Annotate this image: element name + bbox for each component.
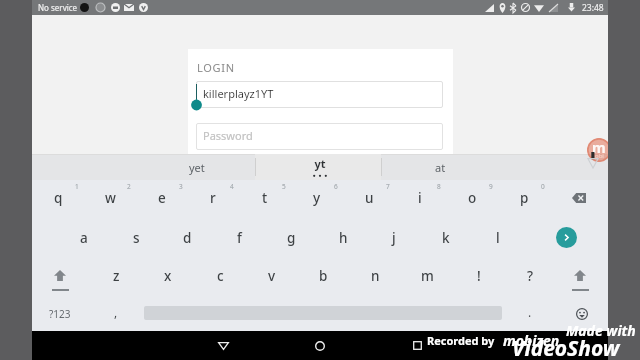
- staticText: k: [442, 229, 450, 247]
- staticText: x: [164, 267, 172, 285]
- staticText: mobizen: [503, 331, 560, 350]
- staticText: 1: [75, 182, 79, 191]
- staticText: j: [392, 229, 396, 247]
- staticText: m: [421, 267, 434, 285]
- staticText: 2: [127, 182, 131, 191]
- staticText: d: [183, 229, 192, 247]
- staticText: 5: [282, 182, 286, 191]
- button[interactable]: j: [368, 219, 420, 257]
- staticText: p: [520, 189, 529, 207]
- staticText: Made with: [566, 321, 636, 340]
- staticText: a: [80, 229, 88, 247]
- button[interactable]: i: [394, 179, 446, 217]
- button[interactable]: killerplayz1YT: [196, 81, 443, 108]
- staticText: 0: [541, 182, 545, 191]
- button[interactable]: d: [161, 219, 213, 257]
- staticText: f: [237, 229, 242, 247]
- staticText: l: [496, 229, 500, 247]
- staticText: n: [371, 267, 380, 285]
- button[interactable]: r: [187, 179, 239, 217]
- button[interactable]: a: [58, 219, 110, 257]
- button[interactable]: k: [420, 219, 472, 257]
- staticText: ?123: [49, 307, 71, 321]
- staticText: w: [105, 189, 116, 207]
- button[interactable]: at: [385, 154, 495, 180]
- staticText: yt: [257, 156, 383, 171]
- staticText: LOGIN: [197, 60, 235, 75]
- button[interactable]: q: [32, 179, 84, 217]
- staticText: t: [262, 189, 268, 207]
- staticText: b: [319, 267, 328, 285]
- staticText: z: [113, 267, 120, 285]
- staticText: yet: [189, 160, 205, 175]
- button[interactable]: h: [317, 219, 369, 257]
- staticText: 9: [489, 182, 493, 191]
- button[interactable]: u: [343, 179, 395, 217]
- staticText: m: [592, 138, 606, 157]
- staticText: ,: [114, 304, 118, 320]
- button[interactable]: Recents: [393, 331, 441, 360]
- button[interactable]: Backspace: [553, 179, 605, 217]
- button[interactable]: Mobizen: [587, 138, 608, 162]
- staticText: i: [418, 189, 422, 207]
- button[interactable]: p: [498, 179, 550, 217]
- button[interactable]: !: [453, 257, 505, 295]
- button[interactable]: ?: [504, 257, 556, 295]
- staticText: Recorded by: [427, 333, 495, 348]
- staticText: q: [54, 189, 63, 207]
- button[interactable]: f: [213, 219, 265, 257]
- button[interactable]: c: [194, 257, 246, 295]
- staticText: No service: [38, 2, 78, 13]
- button[interactable]: e: [136, 179, 188, 217]
- staticText: 7: [386, 182, 390, 191]
- staticText: v: [268, 267, 276, 285]
- button[interactable]: m: [401, 257, 453, 295]
- staticText: 6: [334, 182, 338, 191]
- button[interactable]: Home: [296, 331, 344, 360]
- button[interactable]: w: [84, 179, 136, 217]
- button[interactable]: ,: [96, 296, 136, 332]
- button[interactable]: Shift: [34, 256, 86, 294]
- button[interactable]: g: [265, 219, 317, 257]
- button[interactable]: o: [446, 179, 498, 217]
- button[interactable]: Back: [199, 331, 247, 360]
- button[interactable]: Enter: [540, 218, 592, 256]
- staticText: 3: [179, 182, 183, 191]
- button[interactable]: yt: [257, 154, 383, 180]
- button[interactable]: Shift: [554, 256, 606, 294]
- button[interactable]: Emoji: [561, 296, 602, 332]
- staticText: o: [468, 189, 477, 207]
- button[interactable]: b: [297, 257, 349, 295]
- button[interactable]: x: [142, 257, 194, 295]
- button[interactable]: z: [90, 257, 142, 295]
- button[interactable]: n: [349, 257, 401, 295]
- staticText: !: [477, 267, 481, 285]
- staticText: 23:48: [582, 2, 604, 14]
- button[interactable]: s: [110, 219, 162, 257]
- staticText: y: [313, 189, 321, 207]
- staticText: VideoShow: [512, 334, 620, 360]
- staticText: at: [435, 160, 446, 175]
- button[interactable]: v: [246, 257, 298, 295]
- staticText: u: [365, 189, 374, 207]
- button[interactable]: y: [291, 179, 343, 217]
- staticText: s: [133, 229, 140, 247]
- staticText: 4: [230, 182, 234, 191]
- staticText: killerplayz1YT: [203, 86, 274, 101]
- staticText: obi: [595, 152, 604, 160]
- staticText: .: [528, 304, 532, 320]
- button[interactable]: .: [510, 296, 550, 332]
- staticText: 8: [437, 182, 441, 191]
- staticText: e: [158, 189, 166, 207]
- button[interactable]: Password: [196, 123, 443, 150]
- staticText: ?: [527, 267, 534, 285]
- button[interactable]: l: [472, 219, 524, 257]
- button[interactable]: yet: [142, 154, 252, 180]
- button[interactable]: t: [239, 179, 291, 217]
- staticText: r: [210, 189, 216, 207]
- staticText: Password: [203, 128, 253, 143]
- button[interactable]: ?123: [34, 296, 86, 332]
- staticText: h: [339, 229, 348, 247]
- staticText: g: [287, 229, 296, 247]
